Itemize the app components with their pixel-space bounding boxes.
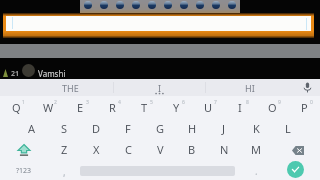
staticText: R	[109, 100, 116, 115]
staticText: M	[251, 142, 261, 157]
button[interactable]	[6, 16, 311, 31]
button[interactable]: V	[144, 139, 176, 160]
button[interactable]: I	[224, 97, 256, 118]
button[interactable]: Backspace	[272, 139, 320, 160]
staticText: 7	[214, 99, 217, 106]
button[interactable]: A	[16, 118, 48, 139]
button[interactable]: W	[32, 97, 64, 118]
staticText: J	[222, 121, 226, 136]
staticText: E	[77, 100, 84, 115]
button[interactable]: T	[128, 97, 160, 118]
staticText: A	[28, 121, 36, 136]
button[interactable]: R	[96, 97, 128, 118]
staticText: Vamshi	[38, 68, 66, 79]
staticText: 3	[86, 99, 89, 106]
staticText: Q	[12, 100, 21, 115]
button[interactable]: B	[176, 139, 208, 160]
staticText: I	[158, 82, 162, 94]
staticText: 5	[150, 99, 153, 106]
staticText: Y	[173, 100, 180, 115]
staticText: 4	[118, 99, 121, 106]
button[interactable]: J	[208, 118, 240, 139]
staticText: ?123	[16, 166, 32, 176]
staticText: Z	[61, 142, 68, 157]
staticText: ,	[63, 165, 66, 179]
button[interactable]: Emoji picker	[80, 0, 240, 13]
staticText: THE	[62, 82, 79, 94]
staticText: U	[204, 100, 213, 115]
staticText: L	[285, 121, 291, 136]
button[interactable]: I	[115, 79, 205, 96]
staticText: D	[92, 121, 101, 136]
button[interactable]: Enter	[277, 160, 320, 180]
button[interactable]: Space	[80, 160, 235, 180]
staticText: 1	[22, 99, 25, 106]
staticText: S	[61, 121, 68, 136]
staticText: 6	[182, 99, 185, 106]
button[interactable]: O	[256, 97, 288, 118]
button[interactable]: Voice input	[295, 79, 320, 96]
button[interactable]: Shift	[0, 139, 48, 160]
staticText: HI	[245, 82, 255, 94]
button[interactable]: ?123	[0, 160, 48, 180]
button[interactable]: Z	[48, 139, 80, 160]
button[interactable]: K	[240, 118, 272, 139]
staticText: 2	[54, 99, 57, 106]
staticText: V	[157, 142, 164, 157]
staticText: 8	[246, 99, 249, 106]
button[interactable]: Y	[160, 97, 192, 118]
staticText: F	[125, 121, 131, 136]
button[interactable]: H	[176, 118, 208, 139]
button[interactable]: X	[80, 139, 112, 160]
button[interactable]: HI	[205, 79, 295, 96]
staticText: 9	[278, 99, 281, 106]
button[interactable]: U	[192, 97, 224, 118]
staticText: P	[301, 100, 308, 115]
button[interactable]: C	[112, 139, 144, 160]
staticText: T	[141, 100, 148, 115]
button[interactable]: S	[48, 118, 80, 139]
staticText: O	[268, 100, 277, 115]
staticText: H	[188, 121, 197, 136]
staticText: G	[156, 121, 165, 136]
staticText: K	[253, 121, 260, 136]
button[interactable]: N	[208, 139, 240, 160]
staticText: .	[255, 164, 258, 178]
staticText: I	[238, 100, 242, 115]
button[interactable]: P	[288, 97, 320, 118]
button[interactable]: M	[240, 139, 272, 160]
button[interactable]: THE	[25, 79, 115, 96]
button[interactable]: F	[112, 118, 144, 139]
staticText: N	[220, 142, 229, 157]
staticText: 0	[310, 99, 313, 106]
button[interactable]: G	[144, 118, 176, 139]
staticText: 21	[11, 69, 20, 79]
button[interactable]: D	[80, 118, 112, 139]
staticText: W	[43, 100, 54, 115]
button[interactable]: Q	[0, 97, 32, 118]
staticText: B	[188, 142, 196, 157]
staticText: C	[125, 142, 132, 157]
button[interactable]: E	[64, 97, 96, 118]
button[interactable]: L	[272, 118, 304, 139]
staticText: X	[93, 142, 100, 157]
